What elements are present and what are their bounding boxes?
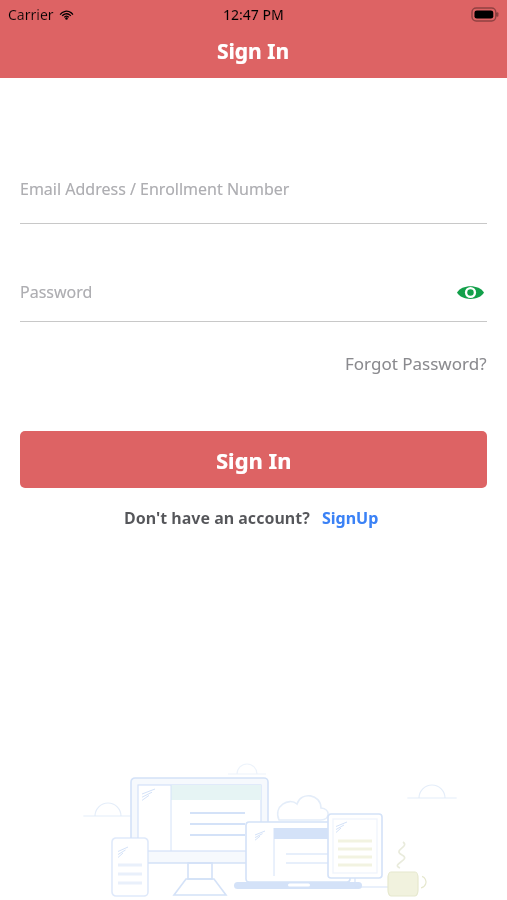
staticText: Sign In	[216, 445, 292, 475]
button[interactable]: Show password	[453, 275, 487, 309]
staticText: Email Address / Enrollment Number	[20, 178, 290, 200]
button[interactable]: Sign In	[20, 431, 487, 488]
button[interactable]: Forgot Password?	[339, 348, 493, 379]
button[interactable]: SignUp	[318, 504, 383, 532]
staticText: Carrier	[8, 5, 54, 24]
button[interactable]: Email Address / Enrollment Number	[20, 178, 487, 224]
button[interactable]: Password	[20, 281, 453, 303]
staticText: 12:47 PM	[223, 5, 284, 24]
staticText: Sign In	[217, 37, 290, 66]
staticText: Don't have an account?	[124, 507, 310, 529]
